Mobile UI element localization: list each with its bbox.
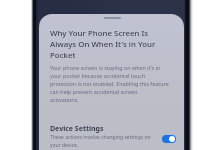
staticText: Why Your Phone Screen Is Always On When … xyxy=(50,28,174,61)
button[interactable]: Device settings toggle, on xyxy=(162,135,176,143)
button[interactable]: Drag handle xyxy=(104,17,121,19)
staticText: Device Settings xyxy=(50,124,104,134)
staticText: Your phone screen is staying on when it'… xyxy=(50,64,182,104)
staticText: These actions involve changing settings … xyxy=(50,134,151,148)
button[interactable]: Device Settings xyxy=(39,108,184,150)
